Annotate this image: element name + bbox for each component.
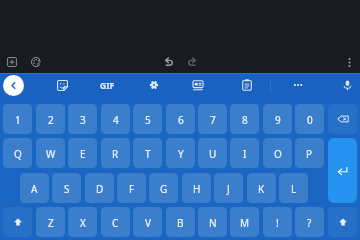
staticText: Y xyxy=(178,147,184,161)
staticText: A xyxy=(31,182,38,196)
button[interactable]: Clipboard xyxy=(235,73,259,97)
button[interactable]: 1 xyxy=(3,104,32,134)
button[interactable]: Stickers xyxy=(50,73,74,97)
button[interactable]: Enter xyxy=(328,138,357,203)
staticText: Z xyxy=(48,216,54,230)
button[interactable]: Theme xyxy=(25,51,47,73)
button[interactable]: V xyxy=(133,207,162,237)
button[interactable]: R xyxy=(101,138,130,168)
button[interactable]: 2 xyxy=(36,104,65,134)
staticText: 4 xyxy=(113,113,119,127)
staticText: K xyxy=(258,182,265,196)
staticText: U xyxy=(209,147,217,161)
staticText: R xyxy=(112,147,119,161)
staticText: H xyxy=(193,182,201,196)
staticText: G xyxy=(160,182,168,196)
staticText: ! xyxy=(276,216,279,230)
staticText: 8 xyxy=(242,113,248,127)
button[interactable]: T xyxy=(133,138,162,168)
button[interactable]: 0 xyxy=(295,104,324,134)
button[interactable]: J xyxy=(214,173,243,203)
button[interactable]: 7 xyxy=(198,104,227,134)
button[interactable]: 9 xyxy=(263,104,292,134)
button[interactable]: Q xyxy=(3,138,32,168)
button[interactable]: Translate xyxy=(186,73,210,97)
staticText: L xyxy=(291,182,297,196)
staticText: B xyxy=(177,216,184,230)
staticText: J xyxy=(227,182,230,196)
button[interactable]: ? xyxy=(295,207,324,237)
button[interactable]: Voice input xyxy=(335,73,359,97)
button[interactable]: X xyxy=(68,207,97,237)
button[interactable]: Z xyxy=(36,207,65,237)
button[interactable]: H xyxy=(182,173,211,203)
staticText: GIF xyxy=(100,80,115,92)
button[interactable]: 8 xyxy=(230,104,259,134)
button[interactable]: ! xyxy=(263,207,292,237)
button[interactable]: Settings xyxy=(142,73,166,97)
button[interactable]: 5 xyxy=(133,104,162,134)
staticText: Q xyxy=(14,147,22,161)
staticText: W xyxy=(46,147,56,161)
staticText: 3 xyxy=(80,113,86,127)
staticText: X xyxy=(80,216,86,230)
button[interactable]: G xyxy=(149,173,178,203)
button[interactable]: K xyxy=(247,173,276,203)
button[interactable]: More options xyxy=(338,51,360,73)
button[interactable]: Undo xyxy=(158,51,180,73)
staticText: F xyxy=(129,182,135,196)
staticText: 6 xyxy=(178,113,184,127)
button[interactable]: C xyxy=(101,207,130,237)
staticText: S xyxy=(64,182,70,196)
staticText: 2 xyxy=(48,113,54,127)
staticText: D xyxy=(96,182,104,196)
staticText: 1 xyxy=(15,113,21,127)
button[interactable]: Shift xyxy=(3,207,32,237)
button[interactable]: Backspace xyxy=(328,104,357,134)
staticText: 7 xyxy=(210,113,216,127)
staticText: T xyxy=(145,147,151,161)
button[interactable]: N xyxy=(198,207,227,237)
staticText: C xyxy=(112,216,119,230)
button[interactable]: 6 xyxy=(166,104,195,134)
staticText: ? xyxy=(307,216,312,230)
button[interactable]: W xyxy=(36,138,65,168)
staticText: 0 xyxy=(307,113,313,127)
button[interactable]: 4 xyxy=(101,104,130,134)
button[interactable]: P xyxy=(295,138,324,168)
button[interactable]: M xyxy=(230,207,259,237)
button[interactable]: B xyxy=(166,207,195,237)
staticText: 9 xyxy=(275,113,281,127)
staticText: P xyxy=(306,147,313,161)
staticText: 5 xyxy=(145,113,151,127)
staticText: E xyxy=(80,147,86,161)
button[interactable]: Add xyxy=(1,51,23,73)
staticText: M xyxy=(240,216,250,230)
button[interactable]: L xyxy=(279,173,308,203)
staticText: N xyxy=(209,216,217,230)
button[interactable]: Shift xyxy=(328,207,357,237)
button[interactable]: Redo xyxy=(181,51,203,73)
button[interactable]: S xyxy=(52,173,81,203)
staticText: V xyxy=(145,216,151,230)
button[interactable]: D xyxy=(85,173,114,203)
button[interactable]: Y xyxy=(166,138,195,168)
button[interactable]: Back xyxy=(3,75,24,96)
button[interactable]: O xyxy=(263,138,292,168)
button[interactable]: E xyxy=(68,138,97,168)
button[interactable]: 3 xyxy=(68,104,97,134)
button[interactable]: U xyxy=(198,138,227,168)
button[interactable]: GIF xyxy=(94,73,118,97)
staticText: O xyxy=(274,147,282,161)
button[interactable]: A xyxy=(20,173,49,203)
button[interactable]: F xyxy=(117,173,146,203)
staticText: I xyxy=(243,147,247,161)
button[interactable]: More xyxy=(286,73,310,97)
button[interactable]: I xyxy=(230,138,259,168)
